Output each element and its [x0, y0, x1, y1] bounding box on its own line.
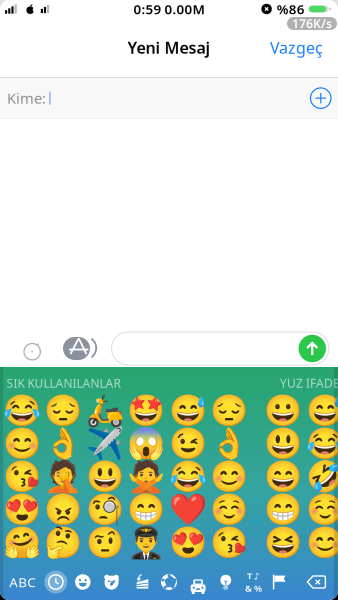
staticText: 🤔 [44, 525, 82, 560]
staticText: 176K/s [292, 15, 332, 31]
staticText: 😄 [264, 459, 302, 494]
button[interactable]: Gönder [298, 335, 326, 362]
button[interactable]: 😂 [304, 427, 338, 460]
button[interactable]: ABC klavye [5, 570, 39, 594]
button[interactable]: 😱 [125, 427, 167, 460]
button[interactable]: Araçlar [189, 574, 205, 590]
staticText: 😊 [306, 525, 338, 560]
button[interactable]: 🧐 [84, 493, 126, 526]
button[interactable]: 😅 [304, 394, 338, 427]
staticText: 😍 [169, 525, 207, 560]
button[interactable]: 😘 [208, 526, 250, 559]
staticText: 👌 [210, 426, 248, 461]
button[interactable]: 😔 [42, 394, 84, 427]
button[interactable]: 🙅 [125, 460, 167, 493]
staticText: 👨‍✈️ [127, 525, 165, 560]
button[interactable]: Spor [161, 574, 177, 590]
staticText: 😉 [169, 426, 207, 461]
button[interactable]: 😂 [167, 460, 209, 493]
staticText: T ♪ [247, 570, 260, 582]
button[interactable]: 😘 [1, 460, 43, 493]
staticText: Yeni Mesaj [127, 37, 210, 58]
staticText: 😱 [127, 426, 165, 461]
staticText: ☺️ [306, 492, 338, 527]
button[interactable]: 😁 [125, 493, 167, 526]
button[interactable]: Yüz ifadeleri [75, 574, 90, 590]
button[interactable]: 😔 [208, 394, 250, 427]
button[interactable]: 🤩 [125, 394, 167, 427]
button[interactable]: 🤗 [1, 526, 43, 559]
button[interactable]: Sil [307, 575, 327, 589]
button[interactable]: 😊 [208, 460, 250, 493]
staticText: ☺️ [210, 492, 248, 527]
staticText: 😃 [86, 459, 124, 494]
staticText: ❤️ [169, 492, 207, 527]
button[interactable]: Semboller [245, 570, 262, 594]
button[interactable]: 🤔 [42, 526, 84, 559]
staticText: 😂 [169, 459, 207, 494]
staticText: 😠 [44, 492, 82, 527]
button[interactable]: Vazgeç [270, 37, 323, 58]
button[interactable]: 🤨 [84, 526, 126, 559]
button[interactable]: 😁 [262, 493, 304, 526]
staticText: 0:59 0.00M [133, 0, 204, 18]
button[interactable]: 😅 [167, 394, 209, 427]
button[interactable]: ❤️ [167, 493, 209, 526]
staticText: 😆 [264, 525, 302, 560]
button[interactable]: 😃 [262, 427, 304, 460]
staticText: 🤗 [3, 525, 41, 560]
button[interactable]: ☺️ [208, 493, 250, 526]
staticText: Kime: [7, 88, 46, 108]
button[interactable]: 😃 [84, 460, 126, 493]
button[interactable]: Yiyecek [134, 574, 150, 590]
button[interactable]: 😊 [1, 427, 43, 460]
button[interactable]: Mesaj [111, 332, 329, 365]
button[interactable]: 😂 [1, 394, 43, 427]
staticText: 👌 [44, 426, 82, 461]
button[interactable]: Hayvanlar [103, 574, 119, 590]
button[interactable]: 👌 [208, 427, 250, 460]
button[interactable]: 😠 [42, 493, 84, 526]
button[interactable]: Kamera [20, 336, 40, 360]
button[interactable]: Uygulamalar [63, 336, 97, 361]
staticText: 🧐 [86, 492, 124, 527]
staticText: ✈️ [86, 426, 124, 461]
button[interactable]: 🤦 [42, 460, 84, 493]
button[interactable]: 😀 [262, 394, 304, 427]
staticText: 😍 [3, 492, 41, 527]
button[interactable]: Nesneler [218, 574, 234, 590]
button[interactable]: 😆 [262, 526, 304, 559]
staticText: 🤦 [44, 459, 82, 494]
staticText: 🛵 [86, 393, 124, 428]
button[interactable]: 👨‍✈️ [125, 526, 167, 559]
button[interactable]: ✈️ [84, 427, 126, 460]
button[interactable]: Sık kullanılanlar [44, 570, 67, 593]
staticText: 😔 [210, 393, 248, 428]
staticText: YÜZ İFADELERİ [280, 375, 338, 391]
staticText: Vazgeç [270, 37, 323, 58]
button[interactable]: 🤣 [304, 460, 338, 493]
button[interactable]: 🛵 [84, 394, 126, 427]
button[interactable]: 😄 [262, 460, 304, 493]
staticText: 🙅 [127, 459, 165, 494]
button[interactable]: 😍 [1, 493, 43, 526]
staticText: 😀 [264, 393, 302, 428]
staticText: %86 [277, 0, 305, 18]
button[interactable]: Bayraklar [272, 574, 288, 590]
staticText: ABC [9, 573, 35, 591]
staticText: 🤨 [86, 525, 124, 560]
staticText: 😔 [44, 393, 82, 428]
staticText: 😅 [169, 393, 207, 428]
staticText: 😂 [3, 393, 41, 428]
button[interactable]: 😍 [167, 526, 209, 559]
staticText: 😘 [210, 525, 248, 560]
button[interactable]: 👌 [42, 427, 84, 460]
button[interactable]: 😊 [304, 526, 338, 559]
button[interactable]: Kişi Ekle [310, 88, 331, 108]
staticText: 🤩 [127, 393, 165, 428]
button[interactable]: 😉 [167, 427, 209, 460]
staticText: & % [245, 582, 262, 594]
staticText: 😊 [210, 459, 248, 494]
staticText: 😘 [3, 459, 41, 494]
button[interactable]: ☺️ [304, 493, 338, 526]
